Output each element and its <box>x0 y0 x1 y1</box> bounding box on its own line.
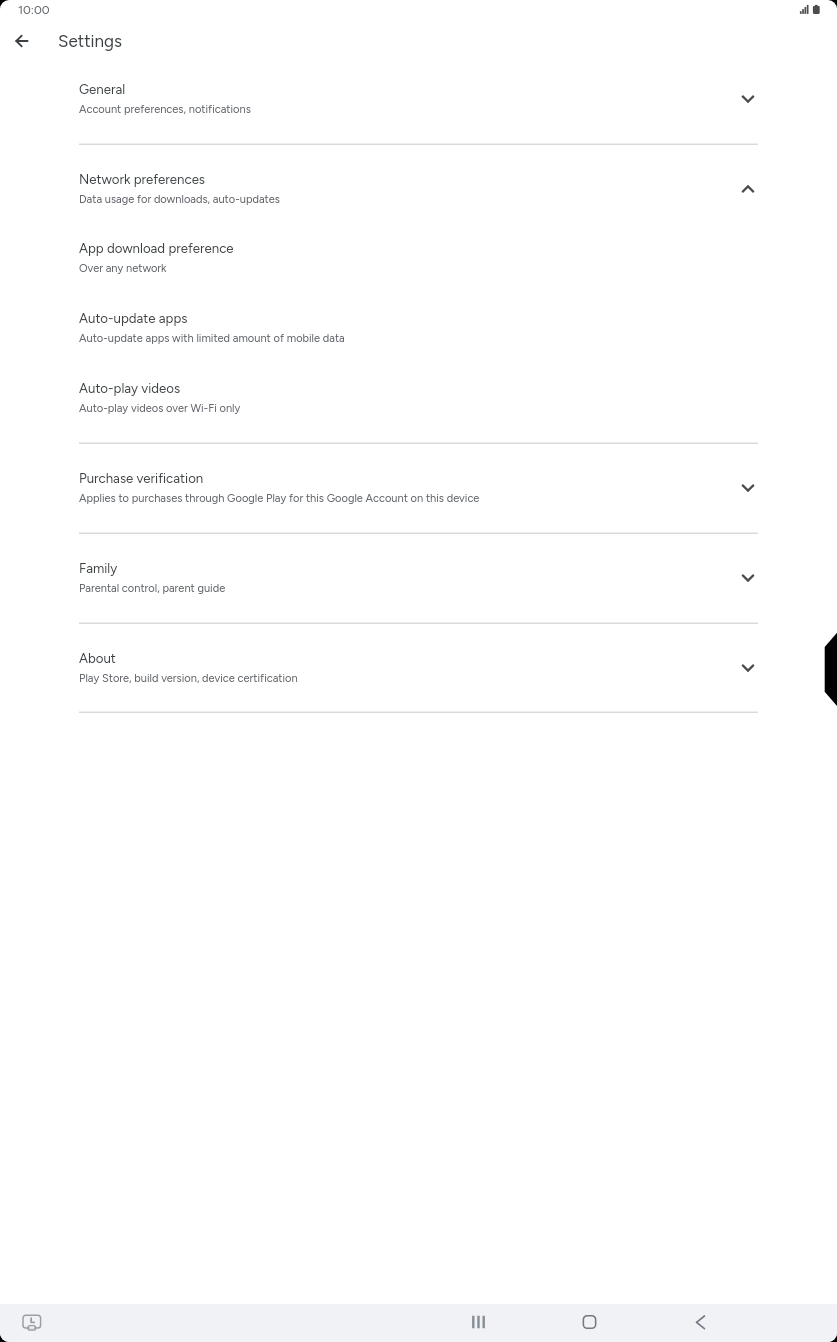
button[interactable]: Home <box>576 1304 603 1342</box>
staticText: Family <box>79 560 118 576</box>
button[interactable] <box>0 443 837 533</box>
button[interactable]: Change keyboard <box>18 1311 45 1338</box>
staticText: Applies to purchases through Google Play… <box>79 492 480 505</box>
button[interactable] <box>0 288 837 358</box>
button[interactable]: Expand <box>735 86 761 112</box>
staticText: Settings <box>58 31 122 51</box>
staticText: Auto-play videos <box>79 380 181 396</box>
staticText: General <box>79 81 126 97</box>
button[interactable] <box>0 533 837 623</box>
staticText: Purchase verification <box>79 470 204 486</box>
button[interactable]: Collapse <box>735 176 761 202</box>
staticText: Auto-update apps <box>79 310 188 326</box>
button[interactable] <box>0 218 837 288</box>
staticText: Play Store, build version, device certif… <box>79 672 298 685</box>
button[interactable]: Recent apps <box>465 1304 492 1342</box>
button[interactable] <box>0 358 837 443</box>
button[interactable]: Back <box>687 1304 714 1342</box>
button[interactable]: Expand <box>735 655 761 681</box>
button[interactable]: Expand <box>735 475 761 501</box>
button[interactable]: Expand <box>735 565 761 591</box>
staticText: 10:00 <box>18 2 50 17</box>
staticText: Data usage for downloads, auto-updates <box>79 193 280 206</box>
button[interactable]: Back <box>0 19 44 63</box>
button[interactable]: Edge panel <box>822 628 837 710</box>
staticText: Auto-play videos over Wi-Fi only <box>79 402 241 415</box>
staticText: Auto-update apps with limited amount of … <box>79 332 345 345</box>
staticText: About <box>79 650 116 666</box>
staticText: App download preference <box>79 240 234 256</box>
staticText: Account preferences, notifications <box>79 103 251 116</box>
button[interactable] <box>0 623 837 712</box>
staticText: Over any network <box>79 262 167 275</box>
button[interactable] <box>0 54 837 144</box>
staticText: Network preferences <box>79 171 206 187</box>
button[interactable] <box>0 144 837 218</box>
staticText: Parental control, parent guide <box>79 582 226 595</box>
